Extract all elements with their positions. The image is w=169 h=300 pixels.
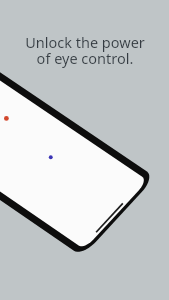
staticText: Unlock the power of eye control. bbox=[25, 32, 145, 69]
